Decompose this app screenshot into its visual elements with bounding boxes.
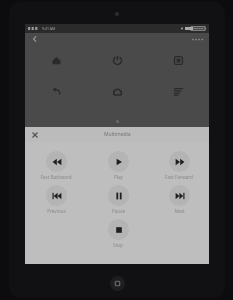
staticText: Fast Forward [165,174,193,180]
button[interactable]: Stop [91,219,145,248]
button[interactable]: Play [91,151,145,180]
button[interactable]: Home [87,80,148,102]
button[interactable]: Fast Backward [29,151,83,180]
staticText: Stop [113,242,123,248]
button[interactable]: Next [152,185,206,214]
button[interactable]: More options [190,34,204,44]
button[interactable]: Display [148,49,209,71]
staticText: Multimedia [104,131,131,138]
button[interactable]: Previous [29,185,83,214]
staticText: 9:41 AM [42,26,56,31]
other: Home [110,276,125,291]
button[interactable]: Back [30,34,40,44]
button[interactable]: Close [29,129,40,140]
button[interactable]: Power Home [25,49,87,71]
staticText: Play [114,174,123,180]
staticText: Next [174,208,185,214]
staticText: Previous [47,208,66,214]
staticText: Pause [112,208,125,214]
button[interactable]: Pause [91,185,145,214]
button[interactable]: Power [87,49,148,71]
button[interactable]: Menu [148,80,209,102]
staticText: Fast Backward [40,174,72,180]
button[interactable]: Back [25,80,87,102]
button[interactable]: Fast Forward [152,151,206,180]
